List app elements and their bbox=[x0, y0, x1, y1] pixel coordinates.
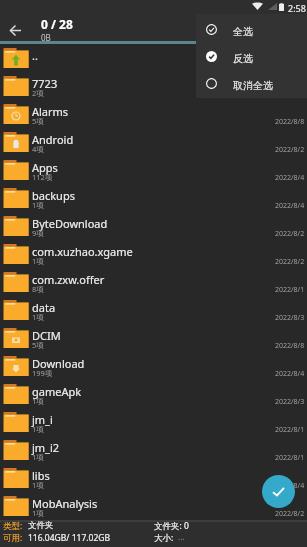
staticText: 8项 bbox=[32, 284, 44, 294]
staticText: 2022/8/2 bbox=[275, 145, 305, 155]
staticText: jm_i bbox=[32, 412, 53, 427]
staticText: jm_i2 bbox=[32, 440, 60, 455]
button[interactable]: data bbox=[0, 296, 307, 324]
staticText: 199项 bbox=[32, 368, 53, 378]
staticText: 2022/8/4 bbox=[275, 369, 305, 379]
button[interactable]: libs bbox=[0, 464, 307, 492]
staticText: 1项 bbox=[32, 480, 44, 490]
staticText: 0 / 28 bbox=[41, 16, 73, 32]
staticText: 2022/8/1 bbox=[275, 453, 305, 463]
button[interactable]: backups bbox=[0, 184, 307, 212]
staticText: 2项 bbox=[32, 88, 44, 98]
button[interactable]: jm_i bbox=[0, 408, 307, 436]
staticText: 1项 bbox=[32, 508, 44, 518]
button[interactable]: Confirm selection bbox=[262, 475, 295, 508]
staticText: 类型: bbox=[3, 520, 23, 532]
staticText: 2:58 bbox=[288, 2, 306, 14]
staticText: 2022/8/3 bbox=[275, 313, 305, 323]
staticText: 2022/8/8 bbox=[275, 341, 305, 351]
button[interactable]: 7723 bbox=[0, 72, 307, 100]
staticText: 1项 bbox=[32, 396, 44, 406]
button[interactable]: com.xuzhao.xgame bbox=[0, 240, 307, 268]
button[interactable]: 反选 bbox=[196, 43, 307, 70]
staticText: 2022/8/3 bbox=[275, 397, 305, 407]
staticText: 2022/8/2 bbox=[275, 229, 305, 239]
staticText: 文件夹: 0 bbox=[154, 520, 189, 532]
staticText: 2022/8/1 bbox=[275, 285, 305, 295]
staticText: 2022/8/8 bbox=[275, 117, 305, 127]
staticText: MobAnalysis bbox=[32, 496, 98, 511]
staticText: 文件夹 bbox=[28, 520, 54, 531]
staticText: Alarms bbox=[32, 104, 69, 119]
staticText: Apps bbox=[32, 160, 58, 175]
staticText: 可用: bbox=[3, 532, 23, 544]
staticText: Download bbox=[32, 356, 85, 371]
staticText: 9项 bbox=[32, 228, 44, 238]
staticText: 取消全选 bbox=[233, 79, 273, 92]
staticText: 2022/8/4 bbox=[275, 201, 305, 211]
staticText: 0B bbox=[41, 32, 51, 43]
staticText: 116.04GB/ 117.02GB bbox=[28, 532, 110, 544]
staticText: ByteDownload bbox=[32, 216, 108, 231]
staticText: backups bbox=[32, 188, 75, 203]
button[interactable]: 取消全选 bbox=[196, 70, 307, 97]
staticText: 2022/8/1 bbox=[275, 425, 305, 435]
staticText: 4项 bbox=[32, 144, 44, 154]
staticText: com.zxw.offer bbox=[32, 272, 105, 287]
staticText: 全选 bbox=[233, 25, 253, 38]
staticText: 1项 bbox=[32, 256, 44, 266]
button[interactable]: com.zxw.offer bbox=[0, 268, 307, 296]
staticText: com.xuzhao.xgame bbox=[32, 244, 133, 259]
staticText: 112项 bbox=[32, 172, 53, 182]
staticText: 2022/8/4 bbox=[275, 173, 305, 183]
button[interactable]: 全选 bbox=[196, 16, 307, 43]
staticText: 2022/8/4 bbox=[275, 481, 305, 491]
button[interactable]: Android bbox=[0, 128, 307, 156]
staticText: Android bbox=[32, 132, 74, 147]
button[interactable]: ByteDownload bbox=[0, 212, 307, 240]
staticText: ... bbox=[178, 531, 185, 542]
staticText: 1项 bbox=[32, 200, 44, 210]
staticText: 1项 bbox=[32, 424, 44, 434]
button[interactable]: jm_i2 bbox=[0, 436, 307, 464]
button[interactable]: gameApk bbox=[0, 380, 307, 408]
staticText: 反选 bbox=[233, 52, 253, 65]
button[interactable]: Download bbox=[0, 352, 307, 380]
staticText: 1项 bbox=[32, 312, 44, 322]
staticText: 大小: bbox=[154, 532, 174, 544]
staticText: .. bbox=[32, 48, 38, 63]
button[interactable]: DCIM bbox=[0, 324, 307, 352]
staticText: 7723 bbox=[32, 76, 58, 91]
staticText: 2022/8/2 bbox=[275, 257, 305, 267]
staticText: 5项 bbox=[32, 116, 44, 126]
button[interactable]: Apps bbox=[0, 156, 307, 184]
button[interactable]: MobAnalysis bbox=[0, 492, 307, 513]
staticText: libs bbox=[32, 468, 50, 483]
button[interactable]: .. bbox=[0, 44, 307, 72]
staticText: 2022/8/9 bbox=[275, 89, 305, 99]
button[interactable]: Back bbox=[4, 19, 26, 41]
staticText: data bbox=[32, 300, 56, 315]
staticText: 1项 bbox=[32, 452, 44, 462]
staticText: gameApk bbox=[32, 384, 82, 399]
button[interactable]: Alarms bbox=[0, 100, 307, 128]
staticText: DCIM bbox=[32, 328, 61, 343]
staticText: 5项 bbox=[32, 340, 44, 350]
staticText: 2022/8/2 bbox=[275, 509, 305, 519]
